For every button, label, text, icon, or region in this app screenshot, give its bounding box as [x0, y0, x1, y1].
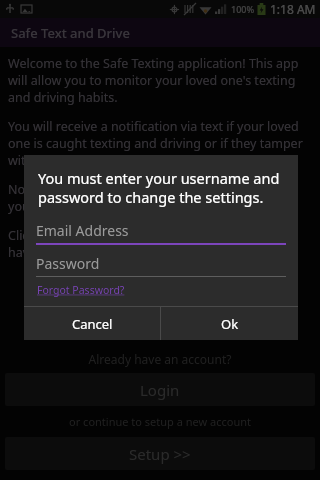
staticText: Forgot Password?: [37, 283, 125, 297]
staticText: Notifications will be sent to the phone …: [8, 181, 312, 215]
staticText: You must enter your username and passwor…: [38, 168, 284, 207]
button[interactable]: Email Address: [36, 221, 286, 245]
staticText: Password: [36, 254, 100, 273]
staticText: Welcome to the Safe Texting application!…: [8, 55, 312, 106]
staticText: 100%: [231, 3, 255, 15]
staticText: Cancel: [72, 315, 113, 333]
staticText: Already have an account?: [0, 351, 320, 367]
staticText: Click setup below to begin, or login if …: [8, 227, 312, 261]
staticText: Email Address: [36, 221, 129, 240]
staticText: You will receive a notification via text…: [8, 118, 312, 169]
staticText: or continue to setup a new account: [0, 414, 320, 429]
staticText: 1:18 AM: [270, 1, 316, 17]
button[interactable]: Password: [36, 254, 286, 277]
staticText: Ok: [221, 315, 239, 333]
button[interactable]: Cancel: [24, 307, 160, 340]
staticText: Login: [140, 380, 180, 400]
staticText: Safe Text and Drive: [11, 24, 130, 42]
button[interactable]: Forgot Password?: [37, 283, 125, 297]
button[interactable]: Setup >>: [5, 437, 315, 470]
staticText: Setup >>: [129, 444, 191, 464]
button[interactable]: Ok: [161, 307, 298, 340]
